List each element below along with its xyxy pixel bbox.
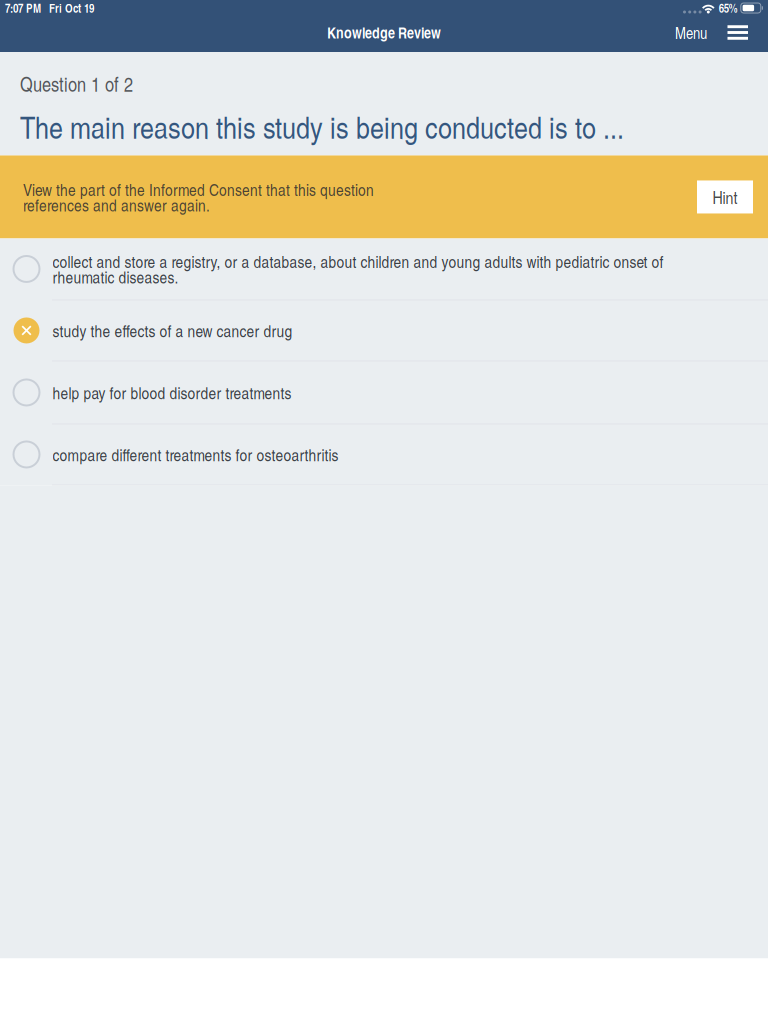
staticText: Knowledge Review: [327, 22, 441, 43]
button[interactable]: Hint: [697, 180, 753, 213]
staticText: Question 1 of 2: [20, 70, 133, 97]
staticText: The main reason this study is being cond…: [20, 105, 624, 147]
staticText: study the effects of a new cancer drug: [52, 323, 292, 338]
staticText: Hint: [712, 185, 737, 209]
staticText: Fri Oct 19: [49, 0, 94, 16]
staticText: help pay for blood disorder treatments: [52, 385, 291, 400]
staticText: 65%: [719, 0, 738, 16]
button[interactable]: Menu: [719, 18, 756, 47]
button[interactable]: Menu: [665, 14, 717, 50]
staticText: Menu: [675, 21, 707, 43]
button[interactable]: study the effects of a new cancer drug: [0, 300, 768, 361]
button[interactable]: compare different treatments for osteoar…: [0, 424, 768, 485]
button[interactable]: help pay for blood disorder treatments: [0, 361, 768, 424]
staticText: 7:07 PM: [5, 0, 41, 16]
button[interactable]: collect and store a registry, or a datab…: [0, 238, 768, 300]
staticText: View the part of the Informed Consent th…: [23, 181, 374, 213]
staticText: collect and store a registry, or a datab…: [52, 253, 663, 285]
staticText: compare different treatments for osteoar…: [52, 447, 338, 462]
